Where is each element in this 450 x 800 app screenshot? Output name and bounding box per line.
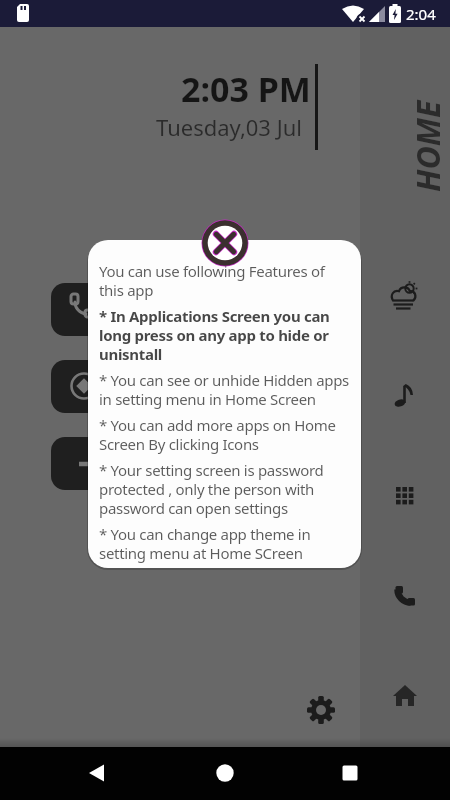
staticText: * In Applications Screen you can long pr… (99, 306, 330, 364)
button[interactable] (396, 487, 414, 505)
button[interactable] (307, 696, 335, 724)
button[interactable] (393, 584, 417, 608)
staticText: * Your setting screen is password protec… (99, 460, 324, 518)
staticText: HOME (406, 100, 450, 192)
staticText: 2:04 (406, 4, 436, 24)
staticText: * You can add more apps on Home Screen B… (99, 415, 336, 454)
staticText: * You can see or unhide Hidden apps in s… (99, 370, 349, 409)
staticText: Tuesday,03 Jul (156, 112, 302, 142)
button[interactable] (201, 219, 249, 267)
button[interactable] (51, 360, 141, 413)
button[interactable] (201, 749, 249, 797)
button[interactable] (51, 283, 141, 336)
button[interactable] (393, 684, 417, 708)
button[interactable] (326, 749, 374, 797)
button[interactable] (51, 437, 141, 490)
button[interactable] (393, 383, 417, 409)
button[interactable] (389, 281, 419, 311)
staticText: 2:03 PM (181, 66, 311, 112)
staticText: * You can change app theme in setting me… (99, 524, 311, 563)
staticText: You can use following Features of this a… (99, 261, 325, 300)
button[interactable] (73, 749, 121, 797)
